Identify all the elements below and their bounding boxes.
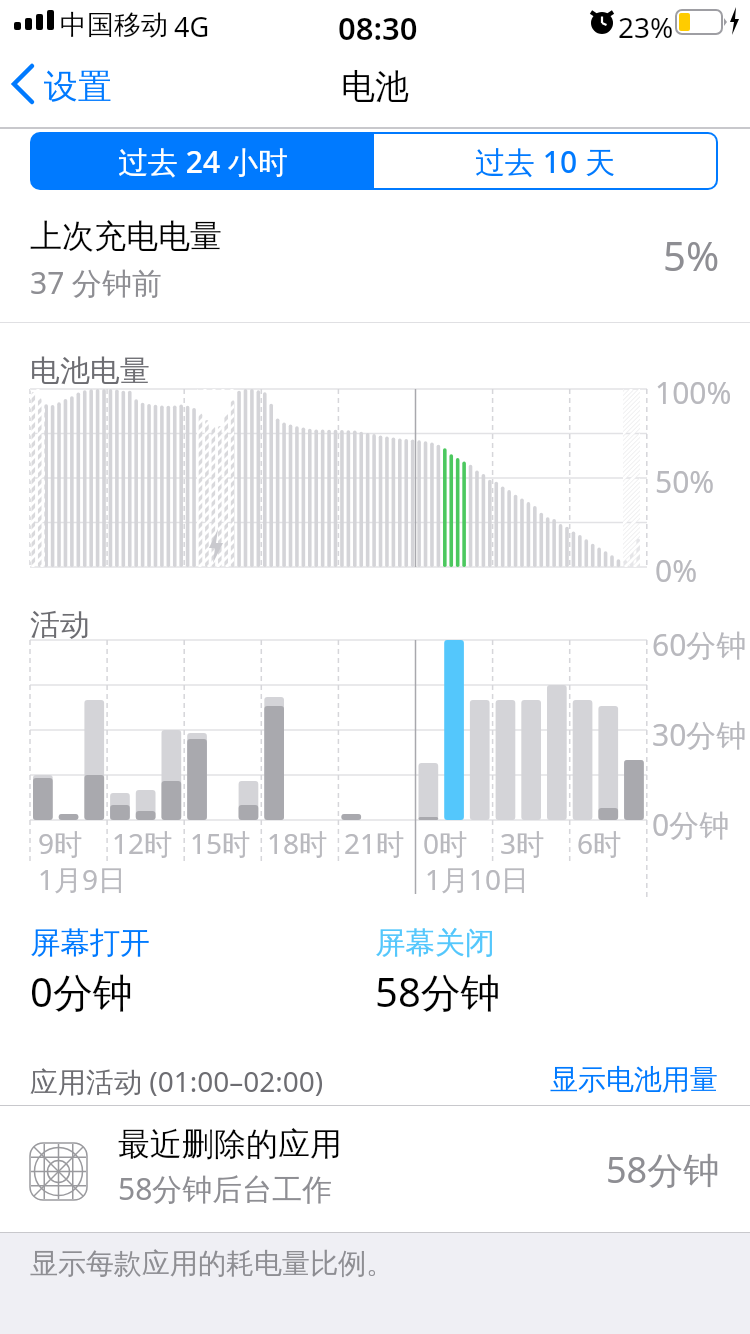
staticText: 15时 <box>190 824 251 862</box>
staticText: 50% <box>655 461 715 502</box>
staticText: 屏幕关闭 <box>375 924 495 962</box>
staticText: 4G <box>174 8 210 45</box>
staticText: 100% <box>655 372 732 413</box>
button[interactable]: 屏幕关闭 <box>375 924 705 1020</box>
button[interactable]: 显示电池用量 <box>550 1062 718 1097</box>
button[interactable]: 最近删除的应用 <box>0 1106 750 1232</box>
staticText: 最近删除的应用 <box>118 1124 342 1164</box>
staticText: 活动 <box>30 606 90 644</box>
staticText: 电池 <box>341 65 409 108</box>
staticText: 应用活动 (01:00–02:00) <box>30 1062 324 1100</box>
button[interactable]: 屏幕打开 <box>30 924 360 1020</box>
staticText: 0分钟 <box>652 804 730 845</box>
staticText: 中国移动 <box>60 8 168 42</box>
button[interactable]: 过去 24 小时 <box>32 134 374 188</box>
staticText: 58分钟 <box>375 964 501 1019</box>
staticText: 18时 <box>267 824 328 862</box>
staticText: 3时 <box>500 824 545 862</box>
staticText: 5% <box>663 228 720 282</box>
staticText: 58分钟 <box>606 1145 720 1194</box>
staticText: 显示每款应用的耗电量比例。 <box>30 1246 394 1281</box>
staticText: 9时 <box>38 824 83 862</box>
button[interactable]: 过去 10 天 <box>374 134 716 188</box>
staticText: 6时 <box>577 824 622 862</box>
staticText: 电池电量 <box>30 352 150 390</box>
staticText: 0% <box>655 550 698 591</box>
staticText: 屏幕打开 <box>30 924 150 962</box>
staticText: 21时 <box>344 824 405 862</box>
staticText: 08:30 <box>338 7 418 49</box>
staticText: 0时 <box>423 824 468 862</box>
staticText: 1月10日 <box>425 860 530 898</box>
staticText: 23% <box>618 8 674 46</box>
button[interactable]: 设置 <box>10 62 150 110</box>
staticText: 显示电池用量 <box>550 1062 718 1097</box>
staticText: 过去 24 小时 <box>118 141 288 182</box>
staticText: 37 分钟前 <box>30 262 163 303</box>
staticText: 0分钟 <box>30 964 133 1019</box>
staticText: 60分钟 <box>652 624 747 665</box>
staticText: 12时 <box>112 824 173 862</box>
staticText: 30分钟 <box>652 714 747 755</box>
staticText: 58分钟后台工作 <box>118 1168 333 1209</box>
staticText: 上次充电电量 <box>30 216 222 256</box>
staticText: 1月9日 <box>38 860 127 898</box>
staticText: 设置 <box>44 65 112 108</box>
staticText: 过去 10 天 <box>475 141 615 182</box>
